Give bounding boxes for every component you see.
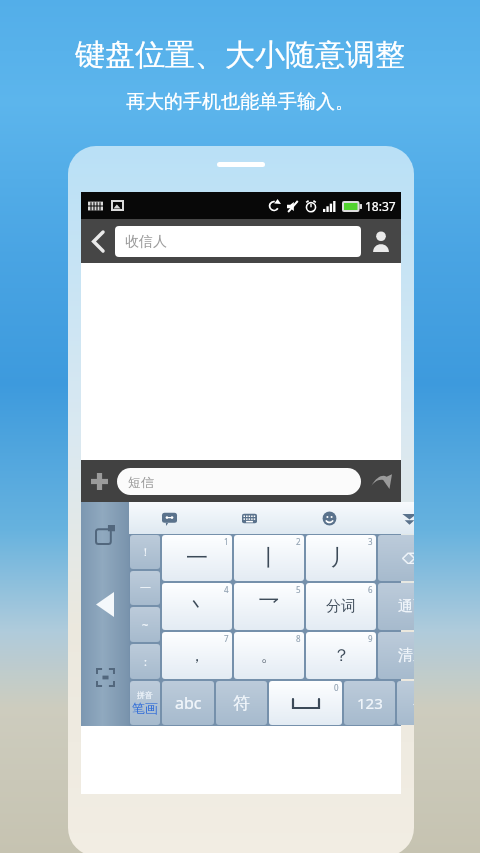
staticText: 2	[296, 536, 301, 547]
button[interactable]: 符	[216, 681, 267, 725]
button[interactable]: Choose contact	[361, 219, 401, 263]
button[interactable]: Resize keyboard	[91, 520, 119, 548]
staticText: 乛	[259, 594, 279, 619]
button[interactable]: Move keyboard left	[87, 586, 123, 622]
staticText: ！	[140, 545, 151, 559]
staticText: 符	[233, 693, 250, 714]
staticText: :	[144, 654, 147, 669]
button[interactable]: 7	[162, 632, 232, 679]
staticText: ？	[333, 645, 350, 666]
staticText: 笔画	[132, 700, 158, 716]
button[interactable]: 6	[306, 583, 376, 630]
button[interactable]: emoji	[289, 502, 369, 534]
button[interactable]: 清空	[378, 632, 414, 679]
staticText: 通配	[398, 597, 414, 616]
staticText: ，	[189, 646, 205, 666]
button[interactable]: ⌫	[378, 535, 414, 581]
button[interactable]: 1	[162, 535, 232, 581]
staticText: 1	[224, 536, 229, 547]
button[interactable]: kb	[209, 502, 289, 534]
button[interactable]: voice	[129, 502, 209, 534]
staticText: 丨	[258, 544, 280, 572]
button[interactable]: Send	[361, 460, 401, 502]
button[interactable]: 3	[306, 535, 376, 581]
button[interactable]: Keyboard size	[90, 662, 120, 692]
button[interactable]: abc	[162, 681, 214, 725]
staticText: 9	[368, 633, 373, 644]
staticText: 3	[368, 536, 373, 547]
staticText: 0	[334, 682, 339, 693]
button[interactable]: 一	[130, 571, 160, 605]
button[interactable]: 通配	[378, 583, 414, 630]
staticText: 再大的手机也能单手输入。	[126, 90, 354, 114]
button[interactable]: 短信	[117, 468, 361, 495]
button[interactable]: 拼音	[130, 681, 160, 725]
button[interactable]: Enter	[397, 681, 414, 725]
button[interactable]: Add	[81, 460, 117, 502]
staticText: 丶	[187, 594, 207, 619]
staticText: 拼音	[137, 690, 153, 700]
button[interactable]: 收信人	[115, 226, 361, 257]
staticText: ⌫	[402, 550, 414, 567]
staticText: abc	[175, 692, 202, 714]
button[interactable]: 0	[269, 681, 342, 725]
staticText: 。	[261, 646, 277, 666]
staticText: 分词	[326, 597, 356, 616]
button[interactable]: hide	[369, 502, 414, 534]
staticText: 7	[224, 633, 229, 644]
staticText: 4	[224, 584, 229, 595]
staticText: 丿	[330, 544, 352, 572]
button[interactable]: 4	[162, 583, 232, 630]
button[interactable]: Back	[81, 219, 115, 263]
button[interactable]: 8	[234, 632, 304, 679]
button[interactable]: ！	[130, 535, 160, 569]
staticText: 5	[296, 584, 301, 595]
staticText: 收信人	[125, 233, 167, 251]
staticText: 键盘位置、大小随意调整	[75, 36, 405, 74]
staticText: 6	[368, 584, 373, 595]
button[interactable]: 5	[234, 583, 304, 630]
staticText: 短信	[128, 474, 154, 490]
button[interactable]: 9	[306, 632, 376, 679]
button[interactable]: ~	[130, 607, 160, 642]
button[interactable]: :	[130, 644, 160, 679]
staticText: 123	[357, 693, 383, 713]
staticText: 一	[186, 544, 208, 572]
button[interactable]: 123	[344, 681, 395, 725]
button[interactable]: 2	[234, 535, 304, 581]
staticText: ~	[142, 617, 149, 632]
staticText: 18:37	[365, 198, 396, 214]
staticText: 一	[140, 581, 151, 595]
staticText: 清空	[398, 646, 414, 665]
staticText: 8	[296, 633, 301, 644]
